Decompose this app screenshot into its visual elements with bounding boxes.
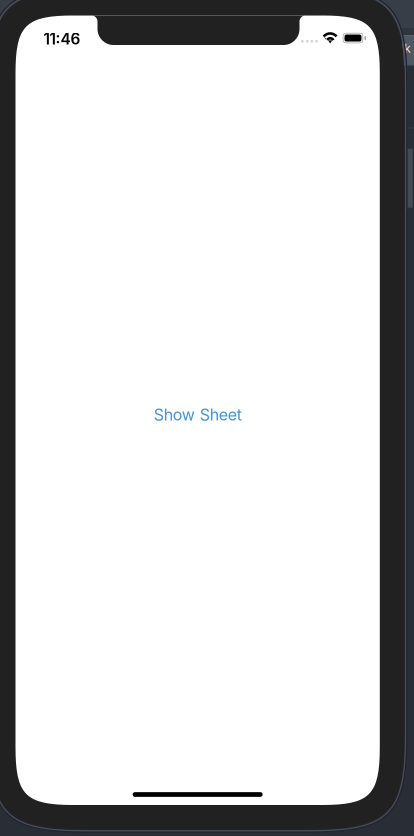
staticText: Show Sheet — [154, 405, 242, 424]
staticText: 11:46 — [43, 30, 80, 48]
button[interactable]: Show Sheet — [154, 405, 242, 424]
staticText: k — [404, 41, 411, 56]
